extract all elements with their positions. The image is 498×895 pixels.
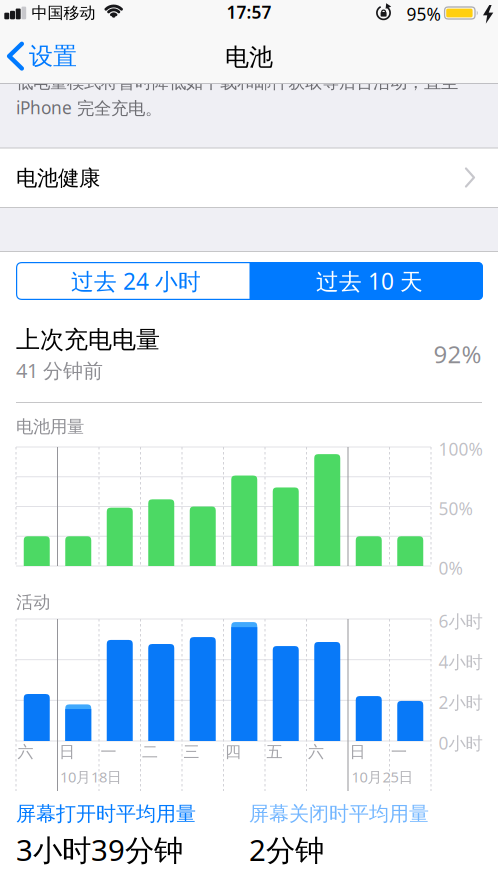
staticText: 低电量模式将暂时降低如下载和邮件获取等后台活动，直至 [16, 71, 458, 93]
staticText: 六 [308, 742, 324, 762]
staticText: 中国移动 [31, 3, 95, 23]
staticText: 三 [183, 742, 199, 762]
staticText: 一 [391, 742, 407, 762]
staticText: 电池 [225, 42, 273, 72]
staticText: 92% [433, 338, 481, 370]
button[interactable]: 设置 [6, 41, 77, 71]
staticText: 过去 24 小时 [71, 266, 201, 296]
staticText: 2小时 [438, 691, 482, 714]
staticText: 六 [17, 742, 33, 762]
staticText: iPhone 完全充电。 [16, 96, 162, 119]
staticText: 日 [349, 742, 365, 762]
staticText: 17:57 [226, 0, 271, 23]
staticText: 上次充电电量 [16, 325, 160, 354]
staticText: 6小时 [438, 609, 482, 632]
button[interactable]: 过去 10 天 [249, 262, 483, 300]
staticText: 电池用量 [16, 416, 84, 437]
button[interactable]: 屏幕关闭时平均用量 [249, 801, 429, 869]
staticText: 日 [59, 742, 75, 762]
staticText: 0小时 [438, 731, 482, 754]
staticText: 二 [142, 742, 158, 762]
staticText: 设置 [29, 41, 77, 71]
staticText: 过去 10 天 [316, 266, 423, 296]
button[interactable]: 过去 24 小时 [16, 262, 249, 300]
button[interactable]: 屏幕打开时平均用量 [16, 801, 196, 869]
staticText: 4小时 [438, 650, 482, 673]
staticText: 屏幕打开时平均用量 [16, 801, 196, 826]
staticText: 10月25日 [351, 767, 413, 786]
staticText: 50% [438, 497, 472, 520]
staticText: 3小时39分钟 [16, 830, 183, 869]
staticText: 四 [225, 742, 241, 762]
staticText: 95% [406, 2, 440, 25]
staticText: 10月18日 [60, 767, 122, 786]
staticText: 一 [100, 742, 116, 762]
staticText: 0% [438, 556, 462, 579]
staticText: 电池健康 [16, 165, 100, 191]
staticText: 41 分钟前 [16, 357, 103, 384]
staticText: 2分钟 [249, 830, 324, 869]
staticText: 屏幕关闭时平均用量 [249, 801, 429, 826]
staticText: 活动 [16, 591, 50, 613]
staticText: 五 [266, 742, 282, 762]
staticText: 100% [438, 437, 482, 460]
button[interactable]: 电池健康 [0, 148, 498, 207]
